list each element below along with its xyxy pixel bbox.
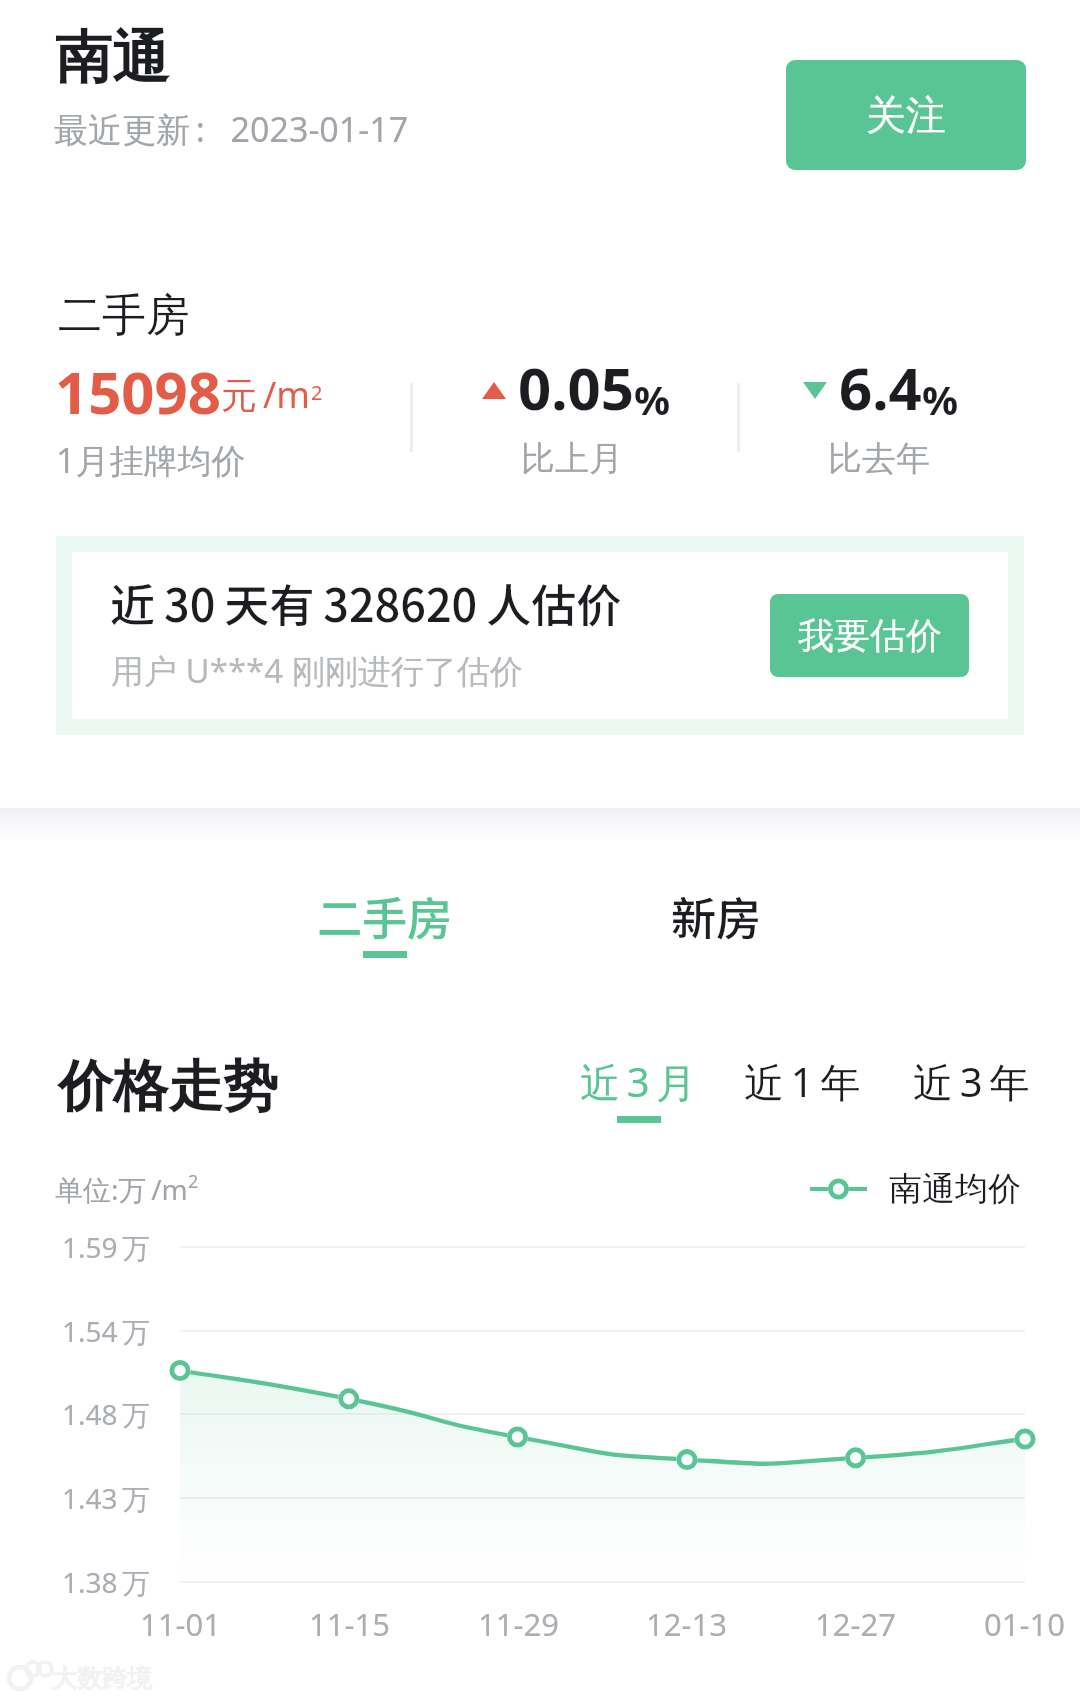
staticText: 1.38 万 — [62, 1563, 151, 1601]
staticText: 01-10 — [984, 1603, 1065, 1645]
staticText: 11-01 — [140, 1603, 221, 1645]
button[interactable]: 近 3 年 — [901, 1054, 1041, 1114]
staticText: 15098 — [55, 352, 221, 431]
staticText: 用户 U***4 刚刚进行了估价 — [111, 648, 523, 693]
staticText: 比去年 — [828, 437, 930, 480]
staticText: 近 3 月 — [580, 1054, 697, 1109]
staticText: 12-27 — [815, 1603, 896, 1645]
staticText: 1月挂牌均价 — [56, 437, 246, 483]
staticText: 最近更新 : 2023-01-17 — [54, 106, 409, 152]
staticText: 二手房 — [58, 288, 190, 343]
staticText: 关注 — [866, 90, 946, 140]
staticText: 1.54 万 — [62, 1312, 151, 1350]
button[interactable]: 关注 — [786, 60, 1026, 170]
staticText: 2 — [188, 1169, 199, 1194]
button[interactable]: 近 1 年 — [732, 1054, 872, 1114]
button[interactable] — [72, 552, 1008, 719]
staticText: 1.48 万 — [62, 1395, 151, 1433]
staticText: 11-15 — [309, 1603, 390, 1645]
staticText: 大数跨境 — [52, 1663, 152, 1694]
staticText: % — [922, 372, 959, 426]
staticText: 元 /m — [221, 370, 311, 419]
staticText: 近 1 年 — [744, 1054, 861, 1109]
staticText: 11-29 — [478, 1603, 559, 1645]
staticText: 价格走势 — [58, 1052, 278, 1121]
staticText: 我要估价 — [798, 613, 942, 658]
staticText: 6.4 — [839, 348, 922, 427]
button[interactable]: 我要估价 — [770, 594, 969, 677]
staticText: 1.59 万 — [62, 1228, 151, 1266]
button[interactable]: 近 3 月 — [568, 1054, 708, 1126]
staticText: 南通 — [55, 22, 169, 94]
staticText: 比上月 — [521, 437, 623, 480]
staticText: 2 — [311, 379, 323, 406]
staticText: 二手房 — [317, 883, 453, 948]
staticText: 0.05 — [518, 348, 634, 427]
button[interactable]: 二手房 — [300, 883, 470, 975]
staticText: 新房 — [671, 883, 762, 948]
staticText: % — [634, 372, 671, 426]
button[interactable]: 新房 — [631, 883, 801, 953]
staticText: 1.43 万 — [62, 1479, 151, 1517]
staticText: 单位:万 /m — [55, 1170, 188, 1208]
staticText: 南通均价 — [889, 1168, 1021, 1210]
staticText: 近 3 年 — [913, 1054, 1030, 1109]
staticText: 近 30 天有 328620 人估价 — [110, 570, 622, 635]
staticText: 12-13 — [646, 1603, 727, 1645]
